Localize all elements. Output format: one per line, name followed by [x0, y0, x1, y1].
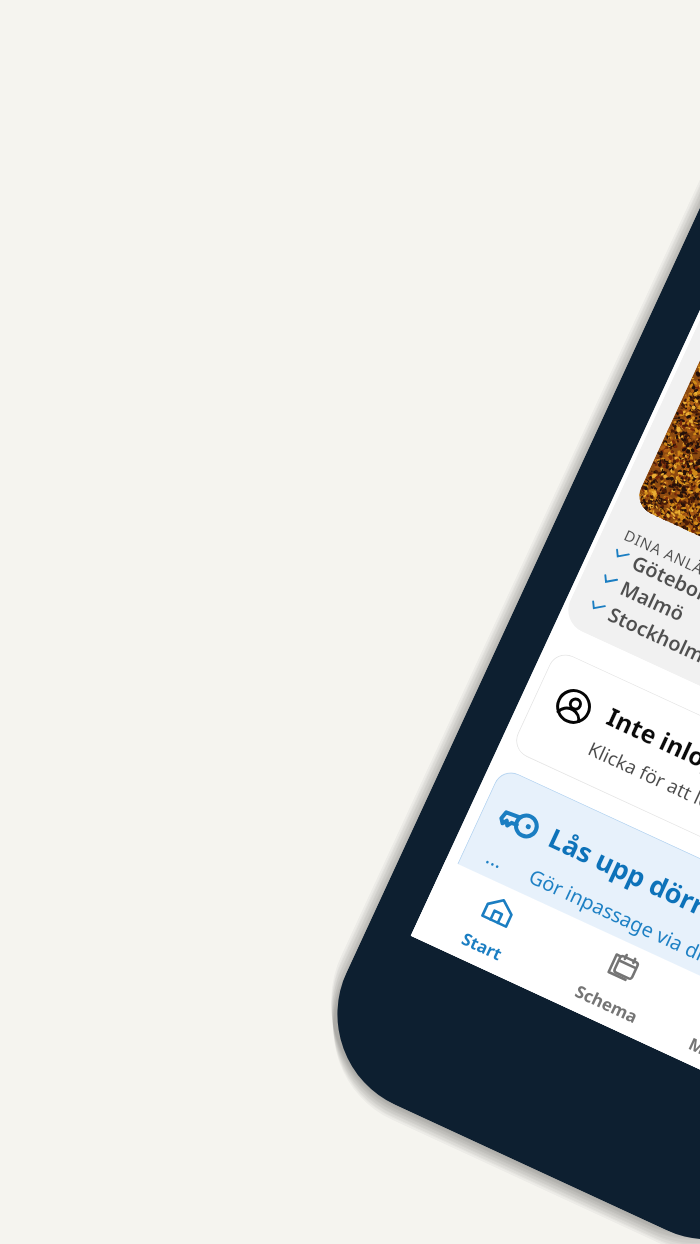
button[interactable]: Start	[411, 859, 572, 994]
staticText: Göteborg	[628, 549, 700, 612]
staticText: Stockholm	[604, 601, 700, 669]
staticText: Gör inpassage via din	[525, 863, 700, 972]
staticText: Inte inloggad	[602, 699, 700, 800]
button[interactable]	[560, 157, 700, 791]
button[interactable]	[439, 767, 700, 1065]
button[interactable]: Schema	[536, 917, 696, 1051]
staticText: Malmö	[616, 574, 689, 627]
button[interactable]: Mitt konto	[660, 974, 700, 1109]
staticText: Lås upp dörr	[543, 819, 700, 923]
staticText: Schema	[572, 979, 642, 1028]
button[interactable]	[510, 649, 700, 912]
staticText: Mitt konto	[685, 1032, 700, 1091]
staticText: ...	[482, 843, 509, 874]
staticText: Start	[458, 927, 506, 965]
staticText: DINA ANLÄGGNINGAR	[621, 525, 700, 614]
staticText: Klicka för att logga in	[584, 736, 700, 838]
